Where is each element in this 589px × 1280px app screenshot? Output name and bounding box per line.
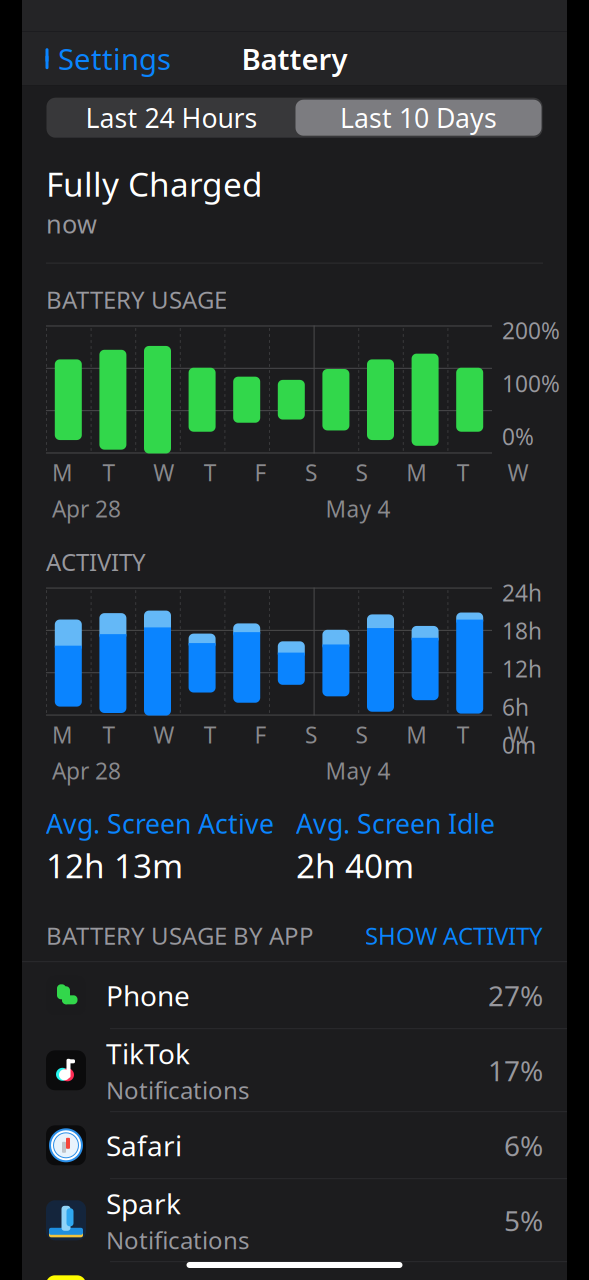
button[interactable]: SHOW ACTIVITY [365, 919, 543, 951]
staticText: Safari [106, 1127, 182, 1164]
staticText: W [507, 457, 528, 488]
staticText: Apr 28 [52, 494, 121, 524]
staticText: Avg. Screen Active [46, 806, 274, 841]
staticText: Notifications [106, 1224, 249, 1256]
staticText: 24h [502, 578, 542, 608]
staticText: Fully Charged [46, 162, 263, 206]
staticText: Notifications [106, 1074, 249, 1106]
staticText: 0% [502, 421, 534, 451]
staticText: M [406, 457, 427, 488]
staticText: W [153, 720, 174, 750]
staticText: 17% [488, 1052, 543, 1089]
staticText: Battery [241, 39, 347, 78]
staticText: BATTERY USAGE BY APP [46, 919, 314, 951]
button[interactable]: Phone [22, 962, 567, 1029]
button[interactable]: Last 10 Days [295, 100, 541, 136]
staticText: BATTERY USAGE [46, 284, 227, 315]
staticText: T [204, 457, 217, 488]
staticText: SHOW ACTIVITY [365, 919, 543, 951]
button[interactable]: Safari [22, 1112, 567, 1179]
staticText: T [103, 457, 116, 488]
staticText: Phone [106, 977, 190, 1014]
staticText: 2h 40m [296, 843, 414, 887]
staticText: T [457, 720, 470, 750]
staticText: 12h [502, 654, 542, 684]
staticText: T [457, 457, 470, 488]
staticText: 0m [502, 730, 536, 760]
staticText: TikTok [106, 1035, 190, 1072]
staticText: F [254, 720, 266, 750]
staticText: S [305, 720, 317, 750]
staticText: Spark [106, 1185, 181, 1222]
staticText: May 4 [326, 756, 391, 786]
button[interactable]: Settings [22, 31, 171, 86]
button[interactable]: Last 24 Hours [47, 99, 295, 137]
staticText: Avg. Screen Idle [296, 806, 495, 841]
staticText: S [356, 457, 368, 488]
staticText: 27% [488, 977, 543, 1014]
staticText: S [356, 720, 368, 750]
staticText: M [52, 457, 73, 488]
staticText: Last 10 Days [340, 100, 497, 135]
staticText: ACTIVITY [46, 546, 146, 578]
staticText: 12h 13m [46, 843, 183, 887]
staticText: 6% [504, 1127, 543, 1164]
staticText: Settings [58, 39, 171, 78]
staticText: Last 24 Hours [85, 100, 257, 135]
staticText: 100% [502, 368, 560, 398]
staticText: 18h [502, 616, 542, 646]
staticText: W [507, 720, 528, 750]
staticText: T [204, 720, 217, 750]
button[interactable]: TikTok [22, 1029, 567, 1112]
staticText: F [254, 457, 266, 488]
staticText: May 4 [326, 494, 391, 524]
staticText: Apr 28 [52, 756, 121, 786]
staticText: W [153, 457, 174, 488]
staticText: S [305, 457, 317, 488]
staticText: M [52, 720, 73, 750]
staticText: 6h [502, 692, 529, 722]
button[interactable]: Spark [22, 1179, 567, 1262]
button[interactable]: Snapchat [22, 1262, 567, 1280]
staticText: 5% [504, 1202, 543, 1239]
staticText: M [406, 720, 427, 750]
staticText: 200% [502, 315, 560, 346]
staticText: now [46, 207, 97, 241]
staticText: T [103, 720, 116, 750]
